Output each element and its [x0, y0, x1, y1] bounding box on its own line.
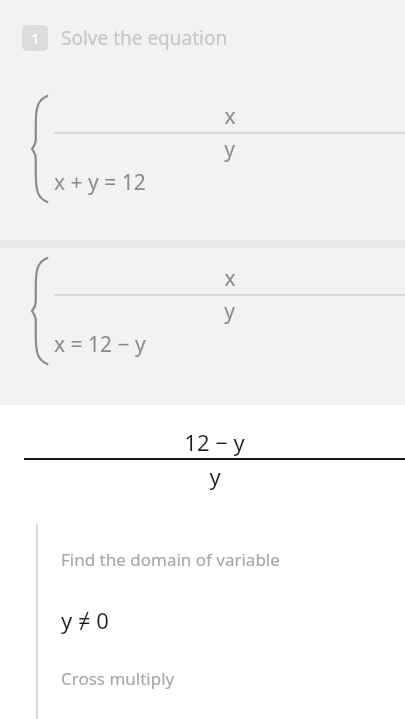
staticText: Find the domain of variable [61, 548, 280, 571]
staticText: x [224, 102, 236, 131]
staticText: Cross multiply [61, 667, 175, 690]
staticText: x = 12 − y [54, 330, 146, 359]
staticText: y [224, 135, 235, 164]
staticText: y ≠ 0 [61, 605, 109, 635]
staticText: x + y = 12 [54, 168, 146, 197]
staticText: Solve the equation [61, 25, 228, 51]
staticText: 12 − y [184, 427, 245, 457]
staticText: y [209, 461, 221, 491]
staticText: x [224, 264, 236, 293]
staticText: y [224, 297, 235, 326]
staticText: 1 [31, 28, 40, 48]
button[interactable]: Step 1: Solve the equation [22, 25, 228, 51]
